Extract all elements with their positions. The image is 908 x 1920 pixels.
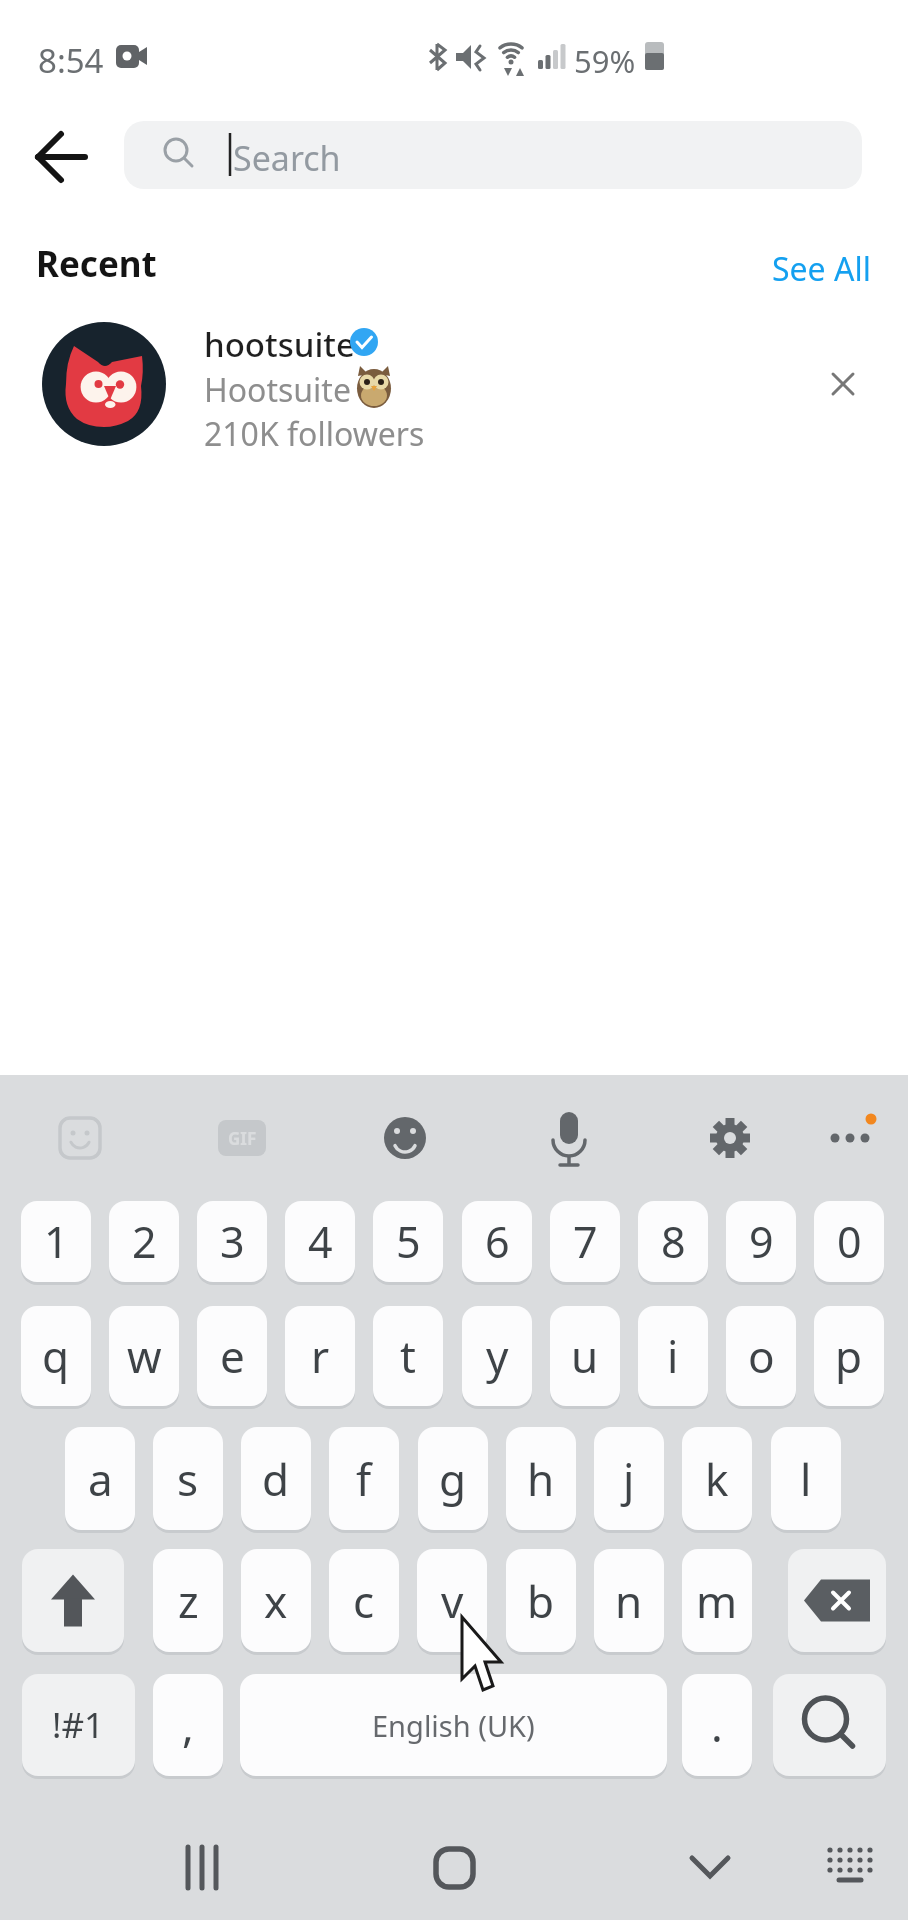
- button[interactable]: .: [682, 1674, 752, 1776]
- staticText: hootsuite: [204, 322, 355, 367]
- button[interactable]: [365, 1098, 445, 1178]
- staticText: c: [353, 1571, 375, 1631]
- button[interactable]: b: [506, 1549, 576, 1652]
- staticText: Search: [233, 135, 341, 181]
- button[interactable]: w: [109, 1306, 179, 1406]
- button[interactable]: v: [417, 1549, 487, 1652]
- staticText: d: [262, 1449, 290, 1509]
- staticText: h: [527, 1449, 555, 1509]
- button[interactable]: 1: [21, 1201, 91, 1282]
- button[interactable]: [0, 310, 908, 460]
- staticText: v: [441, 1571, 464, 1631]
- staticText: x: [264, 1571, 288, 1631]
- staticText: k: [705, 1449, 729, 1509]
- staticText: 59%: [574, 40, 636, 82]
- button[interactable]: h: [506, 1427, 576, 1530]
- staticText: 8:54: [38, 38, 104, 83]
- staticText: i: [667, 1326, 679, 1386]
- button[interactable]: 4: [285, 1201, 355, 1282]
- staticText: q: [42, 1326, 70, 1386]
- button[interactable]: [811, 1098, 891, 1178]
- button[interactable]: [788, 1549, 886, 1652]
- staticText: 1: [44, 1212, 69, 1271]
- button[interactable]: x: [241, 1549, 311, 1652]
- button[interactable]: [155, 1825, 245, 1910]
- button[interactable]: [529, 1098, 609, 1178]
- button[interactable]: [24, 121, 96, 189]
- staticText: 3: [220, 1212, 245, 1271]
- staticText: u: [571, 1326, 599, 1386]
- button[interactable]: k: [682, 1427, 752, 1530]
- button[interactable]: d: [241, 1427, 311, 1530]
- staticText: j: [623, 1449, 635, 1509]
- staticText: 2: [132, 1212, 157, 1271]
- button[interactable]: 7: [550, 1201, 620, 1282]
- staticText: See All: [772, 247, 871, 291]
- button[interactable]: r: [285, 1306, 355, 1406]
- button[interactable]: p: [814, 1306, 884, 1406]
- staticText: English (UK): [372, 1706, 535, 1745]
- button[interactable]: English (UK): [240, 1674, 667, 1776]
- staticText: n: [615, 1571, 643, 1631]
- staticText: GIF: [228, 1127, 257, 1150]
- button[interactable]: [22, 1549, 124, 1652]
- staticText: g: [439, 1449, 467, 1509]
- button[interactable]: s: [153, 1427, 223, 1530]
- button[interactable]: 2: [109, 1201, 179, 1282]
- staticText: .: [711, 1695, 723, 1755]
- button[interactable]: 6: [462, 1201, 532, 1282]
- button[interactable]: See All: [772, 247, 871, 291]
- staticText: f: [356, 1449, 372, 1509]
- staticText: p: [835, 1326, 863, 1386]
- button[interactable]: [40, 1098, 120, 1178]
- button[interactable]: y: [462, 1306, 532, 1406]
- staticText: m: [696, 1571, 738, 1631]
- button[interactable]: 0: [814, 1201, 884, 1282]
- button[interactable]: 5: [373, 1201, 443, 1282]
- staticText: w: [127, 1326, 162, 1386]
- button[interactable]: [665, 1825, 755, 1910]
- staticText: r: [311, 1326, 330, 1386]
- button[interactable]: q: [21, 1306, 91, 1406]
- button[interactable]: [690, 1098, 770, 1178]
- button[interactable]: j: [594, 1427, 664, 1530]
- button[interactable]: u: [550, 1306, 620, 1406]
- button[interactable]: l: [771, 1427, 841, 1530]
- button[interactable]: o: [726, 1306, 796, 1406]
- staticText: a: [88, 1449, 113, 1509]
- staticText: l: [800, 1449, 812, 1509]
- staticText: 210K followers: [204, 412, 425, 456]
- button[interactable]: Search: [124, 121, 862, 189]
- button[interactable]: g: [418, 1427, 488, 1530]
- button[interactable]: f: [329, 1427, 399, 1530]
- staticText: 8: [661, 1212, 686, 1271]
- staticText: Hootsuite: [204, 368, 351, 412]
- button[interactable]: i: [638, 1306, 708, 1406]
- button[interactable]: z: [153, 1549, 223, 1652]
- staticText: 6: [485, 1212, 510, 1271]
- button[interactable]: !#1: [22, 1674, 135, 1776]
- button[interactable]: [202, 1098, 282, 1178]
- button[interactable]: m: [682, 1549, 752, 1652]
- button[interactable]: [773, 1674, 886, 1776]
- button[interactable]: c: [329, 1549, 399, 1652]
- button[interactable]: e: [197, 1306, 267, 1406]
- staticText: Recent: [36, 240, 157, 288]
- staticText: z: [178, 1571, 199, 1631]
- button[interactable]: [409, 1825, 499, 1910]
- staticText: b: [527, 1571, 555, 1631]
- staticText: o: [748, 1326, 775, 1386]
- button[interactable]: ,: [153, 1674, 223, 1776]
- button[interactable]: 3: [197, 1201, 267, 1282]
- staticText: y: [486, 1326, 509, 1386]
- staticText: s: [177, 1449, 199, 1509]
- staticText: 0: [837, 1212, 862, 1271]
- staticText: 7: [573, 1212, 598, 1271]
- staticText: ,: [182, 1695, 194, 1755]
- button[interactable]: n: [594, 1549, 664, 1652]
- button[interactable]: [805, 1825, 895, 1910]
- button[interactable]: 9: [726, 1201, 796, 1282]
- button[interactable]: 8: [638, 1201, 708, 1282]
- button[interactable]: t: [373, 1306, 443, 1406]
- button[interactable]: a: [65, 1427, 135, 1530]
